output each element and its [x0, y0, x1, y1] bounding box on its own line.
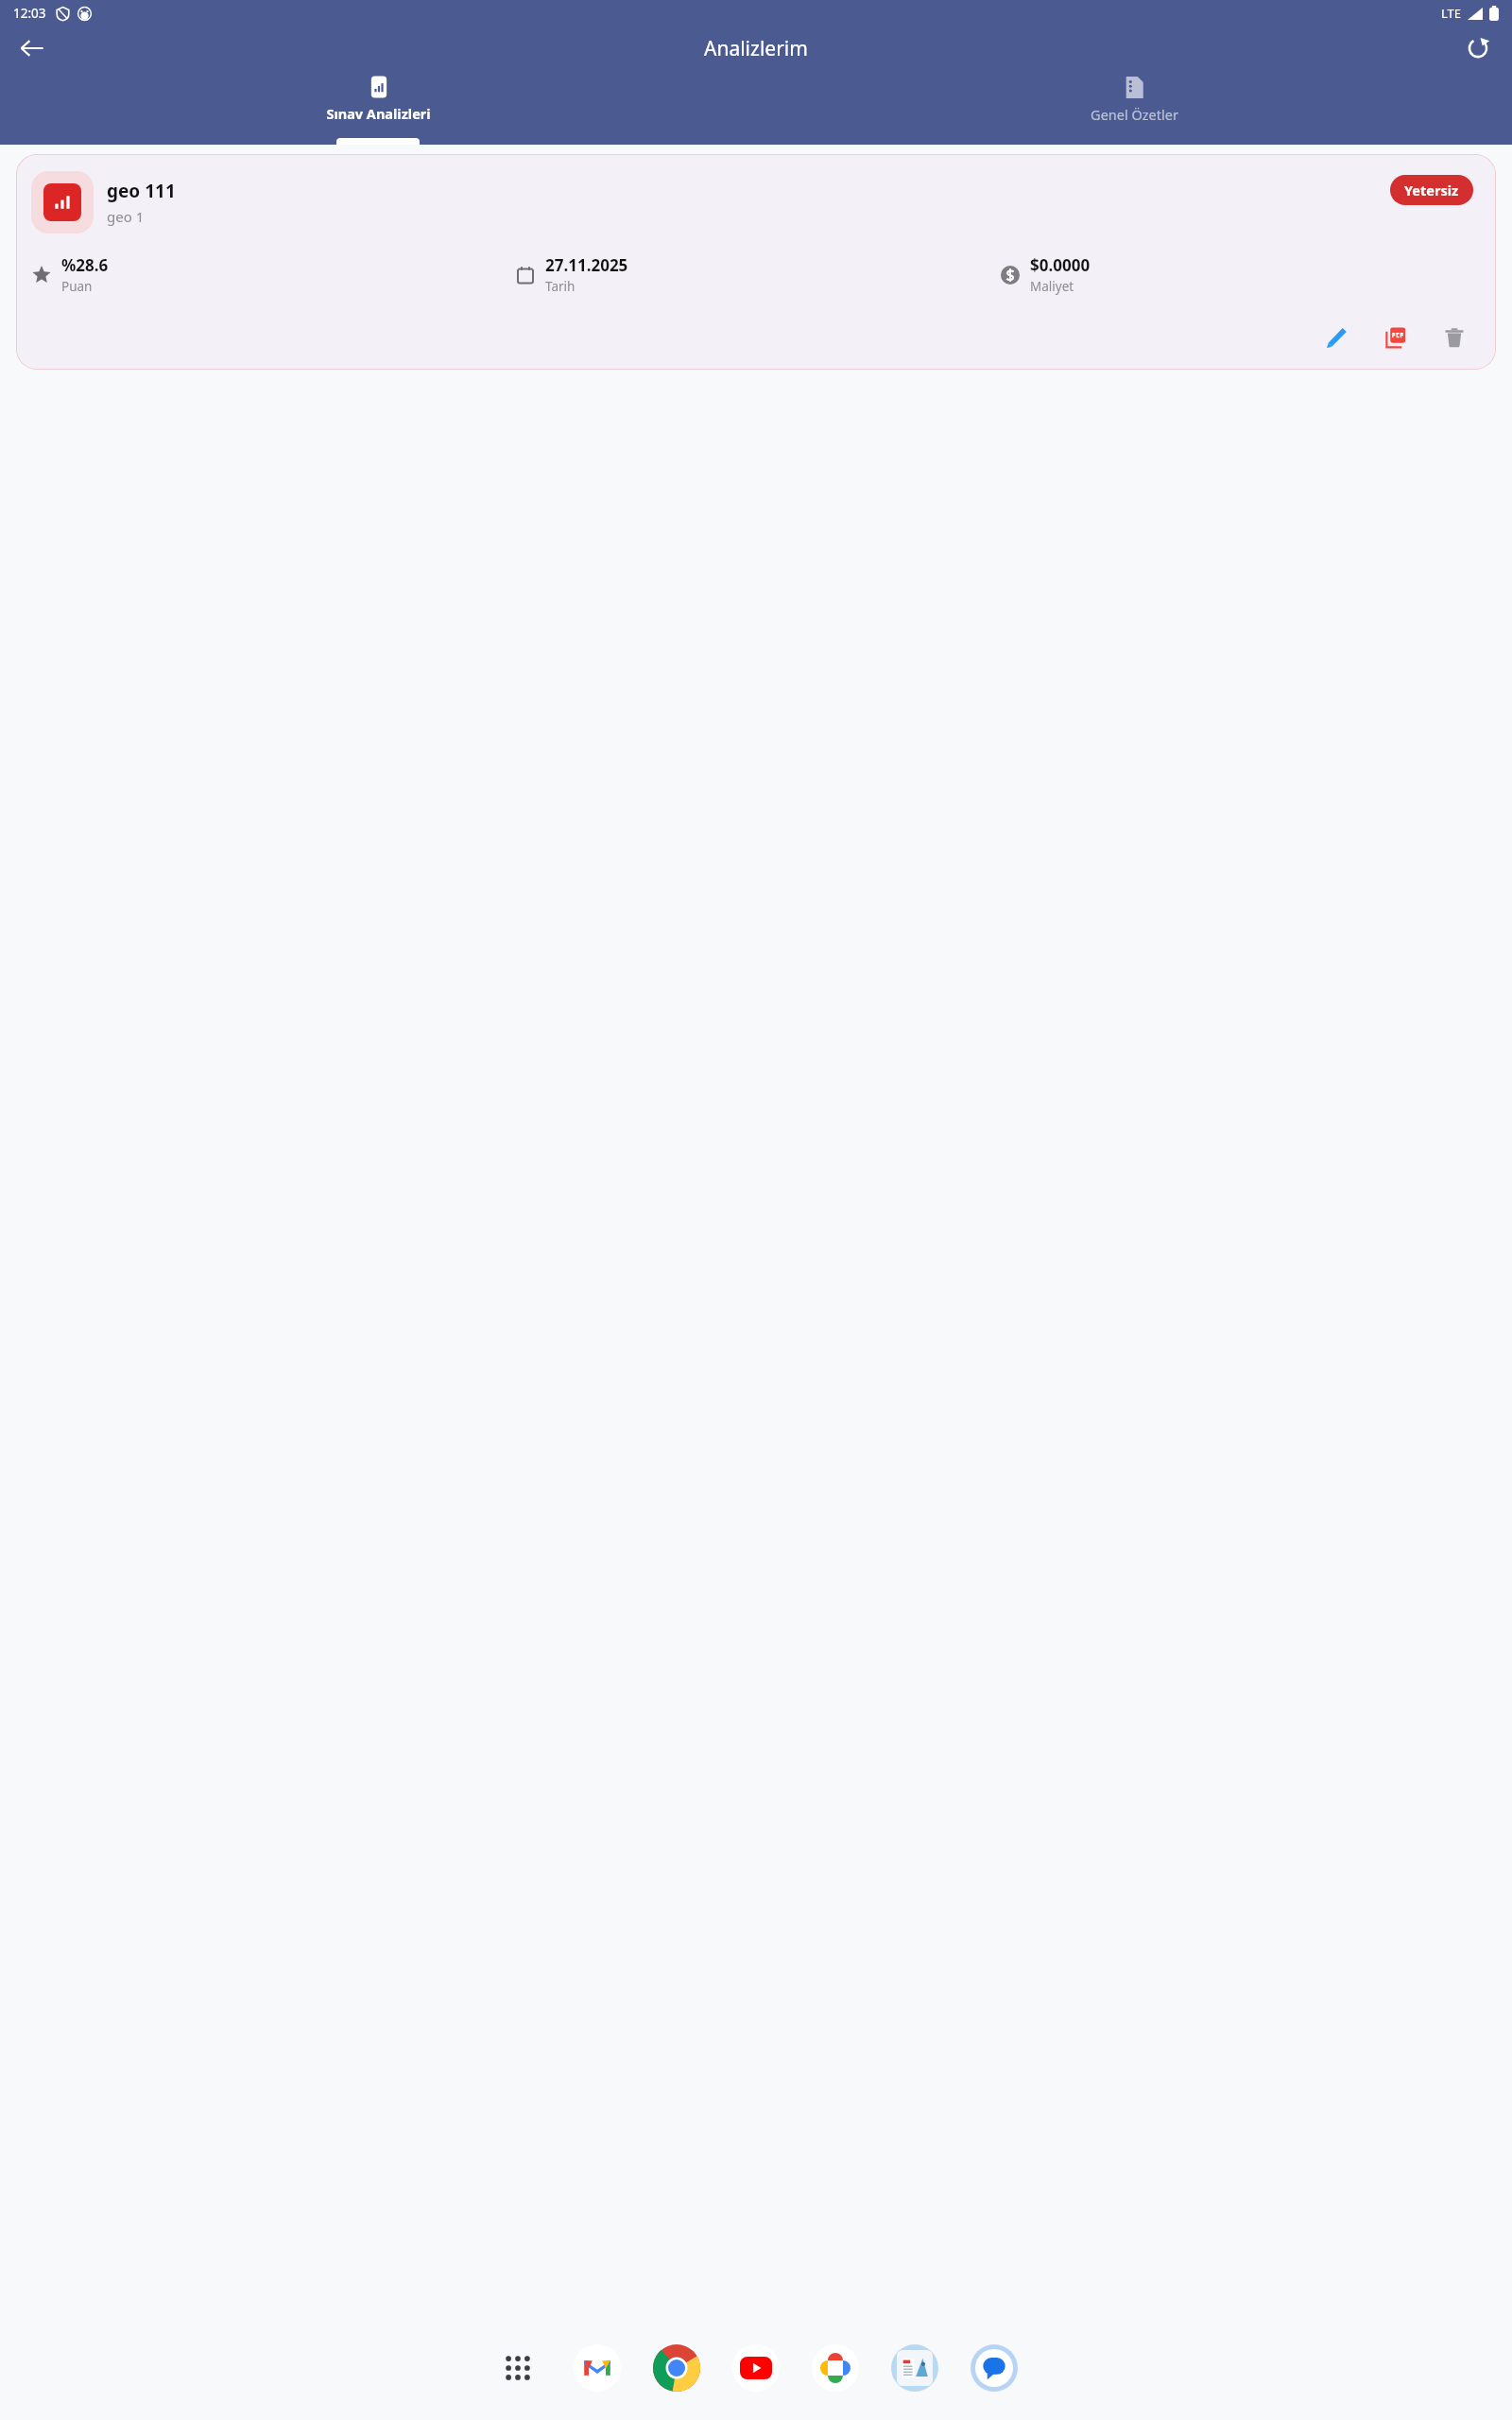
button[interactable]: Yetersiz [1390, 175, 1473, 205]
staticText: %28.6 [61, 254, 109, 276]
staticText: Maliyet [1030, 278, 1074, 295]
staticText: LTE [1441, 5, 1462, 22]
staticText: Yetersiz [1404, 181, 1459, 199]
button[interactable]: geo 111 [16, 154, 1496, 370]
button[interactable]: All apps [490, 2341, 545, 2395]
staticText: Genel Özetler [1091, 105, 1178, 124]
button[interactable]: Edit [1316, 317, 1358, 358]
button[interactable]: Sınav Analizleri [0, 70, 756, 145]
button[interactable]: YouTube [729, 2341, 783, 2395]
button[interactable]: Messages [967, 2341, 1022, 2395]
button[interactable]: Refresh [1457, 27, 1499, 69]
staticText: geo 111 [107, 179, 176, 203]
button[interactable]: Files [887, 2341, 942, 2395]
staticText: Sınav Analizleri [326, 104, 431, 123]
staticText: 12:03 [13, 5, 46, 22]
button[interactable]: Genel Özetler [756, 70, 1512, 145]
staticText: Puan [61, 278, 93, 295]
button[interactable]: Back [11, 27, 53, 69]
button[interactable]: Export PDF [1375, 317, 1417, 358]
button[interactable]: Gmail [570, 2341, 625, 2395]
staticText: geo 1 [107, 207, 145, 226]
staticText: Tarih [545, 278, 576, 295]
button[interactable]: Photos [808, 2341, 863, 2395]
button[interactable]: Chrome [649, 2341, 704, 2395]
button[interactable]: Delete [1434, 317, 1475, 358]
staticText: $0.0000 [1030, 254, 1091, 276]
staticText: 27.11.2025 [545, 254, 628, 276]
staticText: Analizlerim [704, 35, 808, 62]
